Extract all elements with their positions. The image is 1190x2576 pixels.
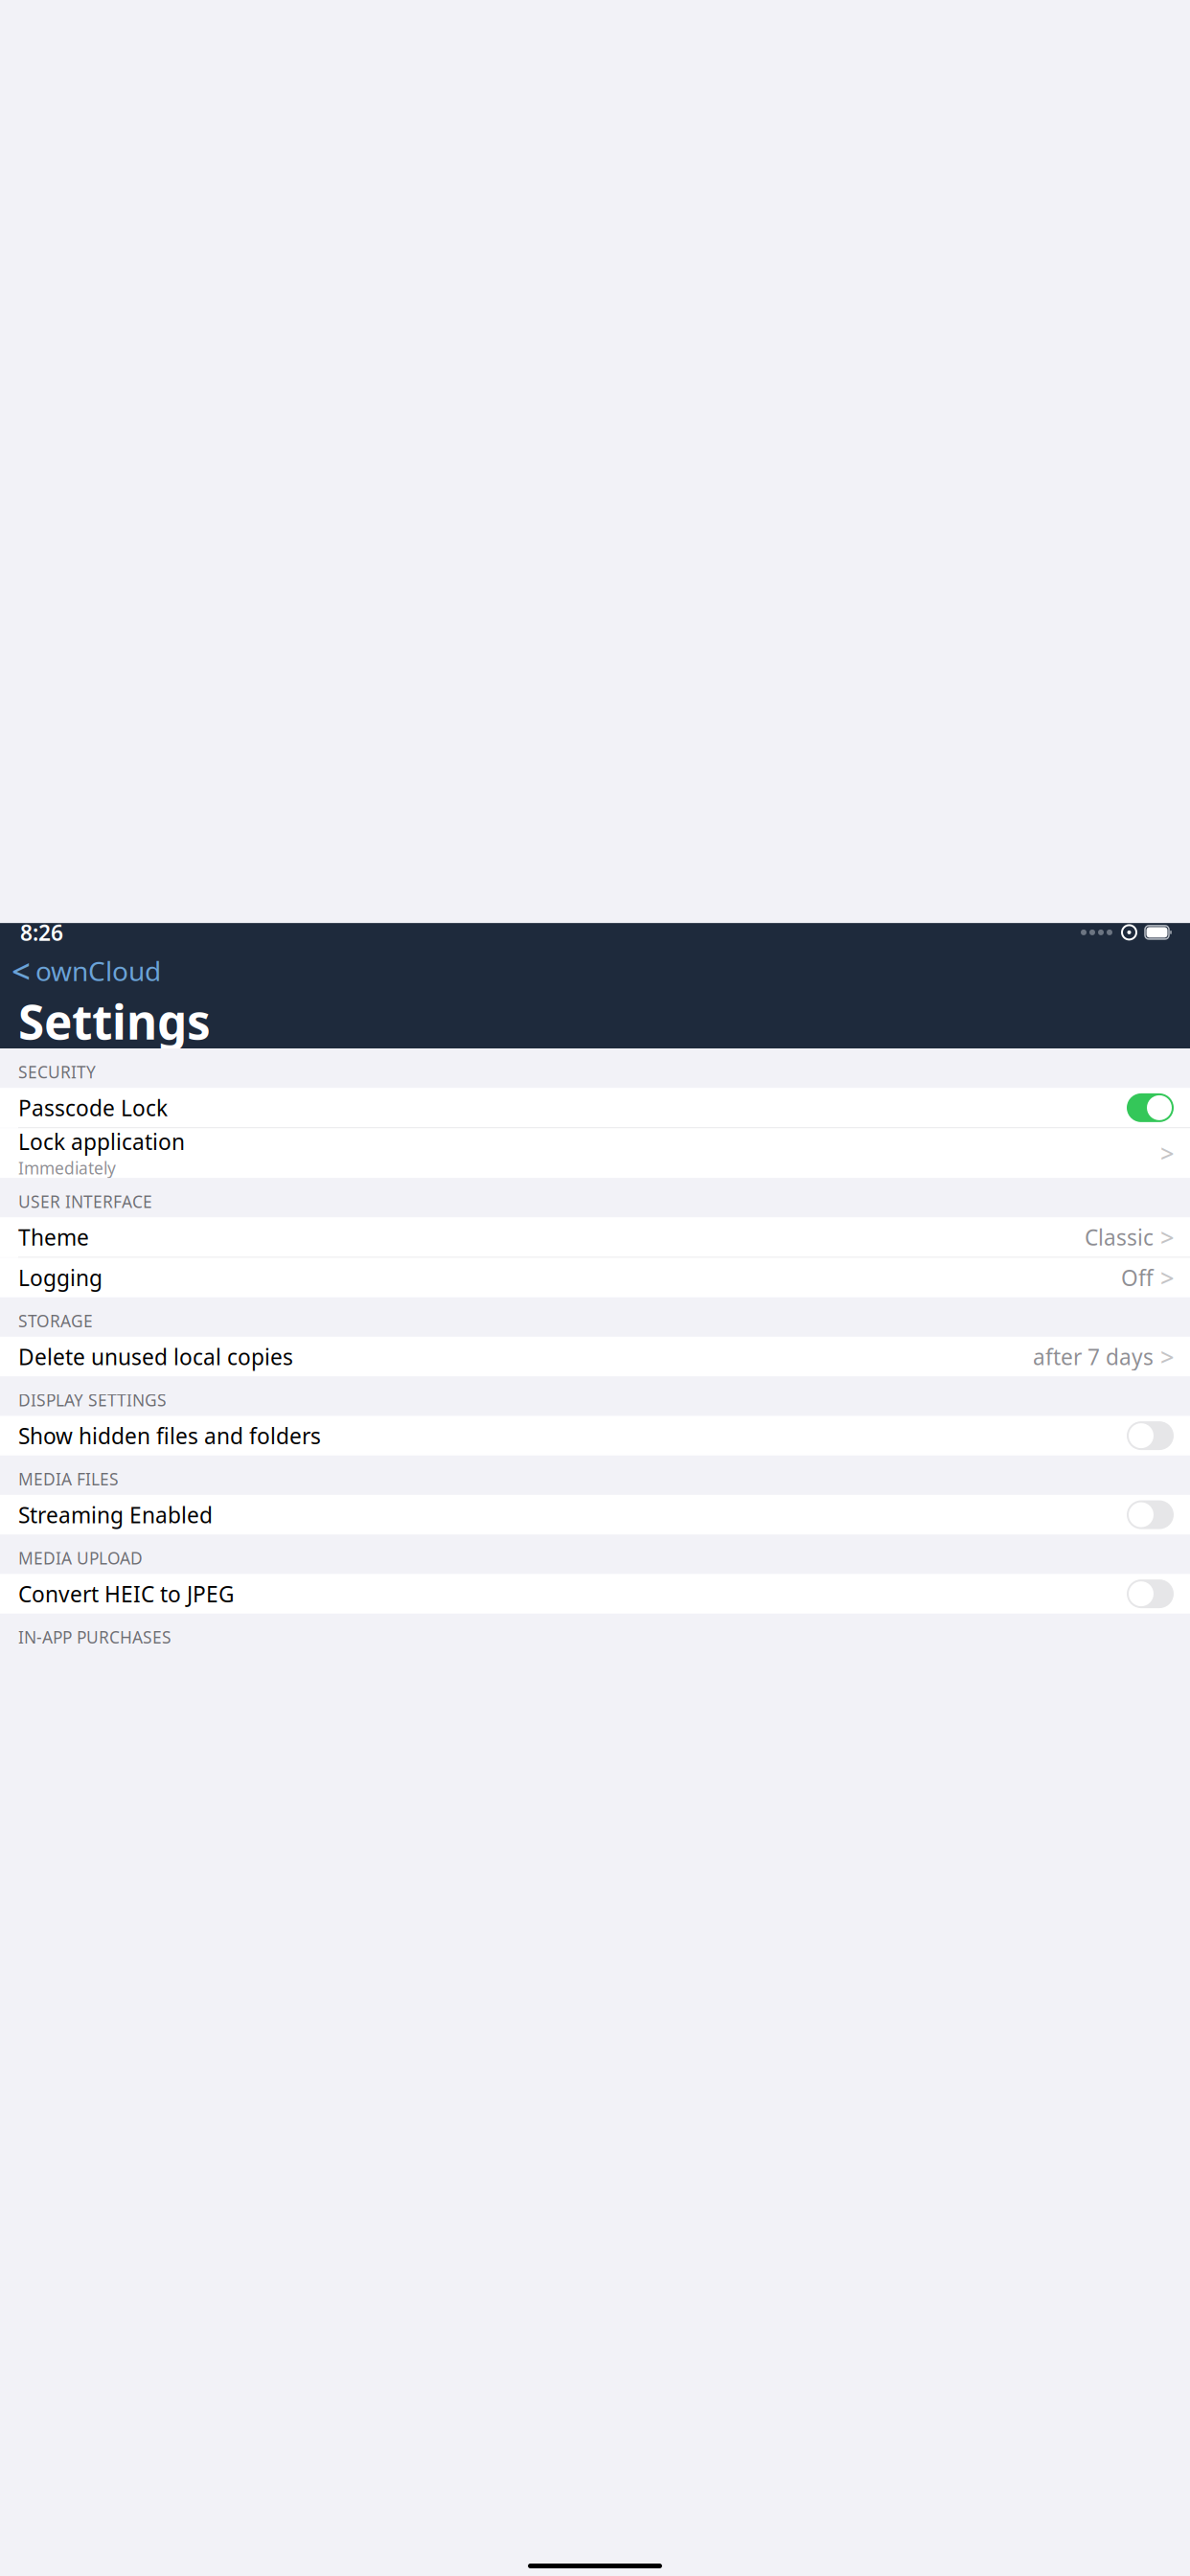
staticText: 8:26 bbox=[20, 918, 63, 947]
button[interactable]: Streaming Enabled bbox=[0, 1495, 1190, 1535]
staticText: Logging bbox=[18, 1263, 103, 1292]
button[interactable]: Lock application bbox=[0, 1128, 1190, 1178]
button[interactable]: Delete unused local copies bbox=[0, 1337, 1190, 1377]
staticText: USER INTERFACE bbox=[18, 1190, 152, 1212]
staticText: > bbox=[1160, 1221, 1174, 1253]
staticText: Theme bbox=[18, 1223, 89, 1252]
staticText: DISPLAY SETTINGS bbox=[18, 1389, 167, 1411]
staticText: MEDIA FILES bbox=[18, 1468, 119, 1490]
button[interactable]: < bbox=[0, 953, 171, 988]
staticText: Passcode Lock bbox=[18, 1093, 168, 1122]
staticText: SECURITY bbox=[18, 1061, 96, 1083]
staticText: Show hidden files and folders bbox=[18, 1421, 321, 1450]
button[interactable]: Passcode Lock bbox=[0, 1088, 1190, 1128]
staticText: ownCloud bbox=[35, 953, 161, 989]
staticText: Immediately bbox=[18, 1157, 116, 1179]
button[interactable]: Show hidden files and folders bbox=[0, 1416, 1190, 1456]
staticText: Lock application bbox=[18, 1127, 185, 1156]
staticText: Off bbox=[1121, 1263, 1154, 1292]
button[interactable]: Theme bbox=[0, 1217, 1190, 1257]
staticText: Convert HEIC to JPEG bbox=[18, 1579, 235, 1608]
staticText: < bbox=[11, 949, 31, 993]
button[interactable]: Convert HEIC to JPEG bbox=[0, 1574, 1190, 1614]
staticText: MEDIA UPLOAD bbox=[18, 1547, 143, 1569]
button[interactable]: Logging bbox=[0, 1258, 1190, 1297]
staticText: after 7 days bbox=[1033, 1342, 1154, 1371]
staticText: Delete unused local copies bbox=[18, 1342, 293, 1371]
staticText: Settings bbox=[18, 990, 211, 1053]
staticText: STORAGE bbox=[18, 1310, 93, 1332]
staticText: Streaming Enabled bbox=[18, 1500, 213, 1529]
staticText: > bbox=[1160, 1137, 1174, 1169]
staticText: > bbox=[1160, 1261, 1174, 1294]
staticText: > bbox=[1160, 1341, 1174, 1373]
staticText: IN-APP PURCHASES bbox=[18, 1626, 172, 1648]
staticText: Classic bbox=[1085, 1223, 1154, 1252]
